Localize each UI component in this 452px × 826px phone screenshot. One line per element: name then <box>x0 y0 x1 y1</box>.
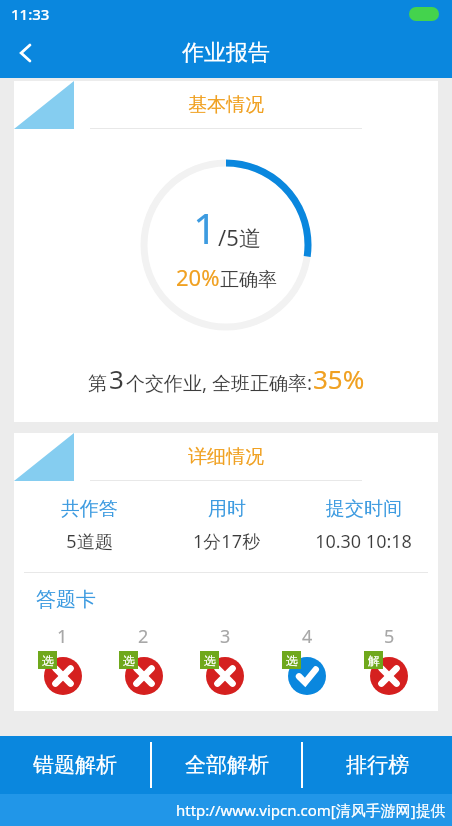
staticText: 用时 <box>208 497 246 521</box>
staticText: 选 <box>204 653 216 668</box>
staticText: 1分17秒 <box>193 529 260 554</box>
staticText: 20% <box>176 262 220 292</box>
button[interactable]: 错题解析 <box>0 736 150 794</box>
staticText: 作业报告 <box>182 39 270 67</box>
staticText: 3 <box>220 624 231 649</box>
staticText: 个交作业, 全班正确率: <box>126 370 313 396</box>
button[interactable]: 题目 2 <box>103 624 184 695</box>
staticText: 选 <box>123 653 135 668</box>
staticText: 提交时间 <box>326 497 402 521</box>
button[interactable]: 全部解析 <box>152 736 301 794</box>
button[interactable]: 题目 5 <box>348 624 430 695</box>
staticText: 解 <box>368 653 380 668</box>
staticText: 2 <box>138 624 149 649</box>
staticText: 基本情况 <box>188 93 264 117</box>
staticText: 10.30 10:18 <box>315 529 412 554</box>
staticText: 共作答 <box>61 497 118 521</box>
staticText: 4 <box>302 624 313 649</box>
staticText: 全部解析 <box>185 752 269 778</box>
staticText: 排行榜 <box>346 752 409 778</box>
button[interactable]: 题目 3 <box>184 624 266 695</box>
staticText: 1 <box>193 199 218 256</box>
staticText: 5道题 <box>66 529 113 554</box>
staticText: 第 <box>88 372 107 396</box>
staticText: 11:33 <box>11 4 50 24</box>
staticText: 选 <box>286 653 298 668</box>
button[interactable]: 题目 4 <box>266 624 348 695</box>
staticText: 错题解析 <box>33 752 117 778</box>
staticText: 5 <box>384 624 395 649</box>
staticText: 1 <box>57 624 68 649</box>
button[interactable]: Back <box>0 28 52 78</box>
staticText: 选 <box>42 653 54 668</box>
staticText: /5道 <box>218 222 261 252</box>
button[interactable]: 排行榜 <box>303 736 452 794</box>
staticText: 35% <box>313 361 365 396</box>
staticText: 正确率 <box>220 268 277 292</box>
staticText: 答题卡 <box>36 587 96 612</box>
button[interactable]: 题目 1 <box>22 624 103 695</box>
staticText: 3 <box>109 361 124 396</box>
staticText: http://www.vipcn.com[清风手游网]提供 <box>176 800 446 820</box>
staticText: 详细情况 <box>188 445 264 469</box>
